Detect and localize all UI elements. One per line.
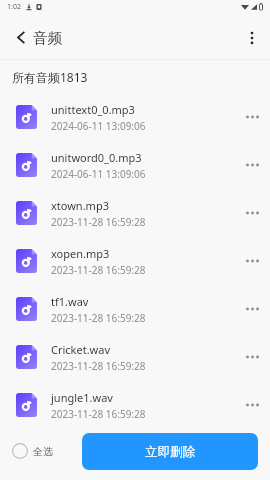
staticText: 2024-06-11 13:09:06 [51, 119, 146, 133]
button[interactable]: tf1.wav [0, 285, 270, 333]
button[interactable]: jungle1.wav [0, 381, 270, 429]
staticText: xtown.mp3 [51, 198, 109, 213]
button[interactable]: unitword0_0.mp3 [0, 141, 270, 189]
button[interactable]: unittext0_0.mp3 [0, 93, 270, 141]
button[interactable]: More options [234, 16, 270, 59]
staticText: jungle1.wav [51, 390, 113, 405]
button[interactable]: More options [234, 333, 270, 381]
staticText: unittext0_0.mp3 [51, 102, 135, 117]
staticText: tf1.wav [51, 294, 89, 309]
button[interactable]: Back [0, 16, 31, 59]
staticText: 1:02 [7, 2, 21, 12]
button[interactable]: More options [234, 285, 270, 333]
staticText: unitword0_0.mp3 [51, 150, 142, 165]
staticText: xopen.mp3 [51, 246, 110, 261]
staticText: 2024-06-11 13:09:06 [51, 167, 146, 181]
staticText: Cricket.wav [51, 342, 111, 357]
staticText: 2023-11-28 16:59:28 [51, 263, 146, 277]
staticText: 立即删除 [145, 444, 195, 460]
staticText: 2023-11-28 16:59:28 [51, 311, 146, 325]
button[interactable]: More options [234, 93, 270, 141]
button[interactable]: More options [234, 237, 270, 285]
button[interactable]: xopen.mp3 [0, 237, 270, 285]
button[interactable]: More options [234, 381, 270, 429]
button[interactable]: 立即删除 [82, 433, 258, 470]
staticText: 全选 [33, 445, 53, 458]
staticText: 音频 [33, 29, 62, 47]
button[interactable]: xtown.mp3 [0, 189, 270, 237]
staticText: 2023-11-28 16:59:28 [51, 359, 146, 373]
button[interactable]: More options [234, 189, 270, 237]
button[interactable]: 全选 [12, 443, 59, 459]
staticText: 所有音频1813 [12, 69, 88, 85]
button[interactable]: Cricket.wav [0, 333, 270, 381]
staticText: 2023-11-28 16:59:28 [51, 407, 146, 421]
staticText: 2023-11-28 16:59:28 [51, 215, 146, 229]
button[interactable]: More options [234, 141, 270, 189]
